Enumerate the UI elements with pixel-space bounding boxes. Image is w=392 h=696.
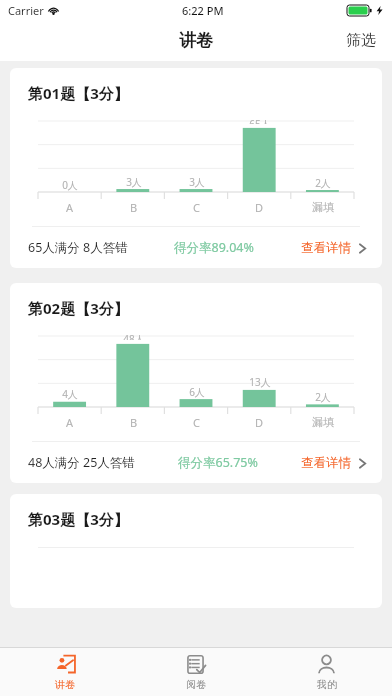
button[interactable]: 我的 [261, 648, 392, 696]
staticText: C [193, 200, 200, 215]
button[interactable]: 第03题【3分】 [10, 494, 382, 608]
staticText: 讲卷 [179, 30, 213, 51]
staticText: 我的 [317, 678, 337, 691]
staticText: 第01题【3分】 [28, 83, 129, 103]
staticText: D [255, 200, 264, 215]
staticText: A [66, 415, 74, 430]
staticText: B [130, 200, 138, 215]
staticText: 第03题【3分】 [28, 509, 129, 529]
button[interactable]: 筛选 [330, 20, 392, 61]
staticText: B [130, 415, 138, 430]
button[interactable]: 讲卷 [0, 648, 130, 696]
staticText: 查看详情 [301, 240, 351, 256]
staticText: 第02题【3分】 [28, 298, 129, 318]
button[interactable]: 阅卷 [130, 648, 261, 696]
staticText: 查看详情 [301, 455, 351, 471]
staticText: 48人 [123, 332, 145, 340]
staticText: D [255, 415, 264, 430]
staticText: 讲卷 [55, 678, 75, 691]
staticText: 3人 [126, 175, 142, 189]
staticText: 65人 [249, 117, 271, 124]
staticText: 6:22 PM [182, 3, 224, 18]
staticText: C [193, 415, 200, 430]
staticText: 6人 [189, 385, 205, 399]
staticText: 2人 [315, 390, 331, 404]
button[interactable]: 查看详情 [301, 240, 366, 256]
button[interactable]: 查看详情 [301, 455, 366, 471]
button[interactable]: 第02题【3分】 [10, 283, 382, 483]
staticText: 得分率65.75% [178, 454, 258, 471]
staticText: 筛选 [346, 31, 376, 50]
button[interactable]: 第01题【3分】 [10, 68, 382, 268]
staticText: 阅卷 [186, 678, 206, 691]
staticText: Carrier [8, 3, 44, 18]
staticText: 3人 [189, 175, 205, 189]
staticText: 48人满分 25人答错 [28, 454, 135, 471]
staticText: 0人 [62, 178, 78, 192]
staticText: 2人 [315, 176, 331, 190]
staticText: 4人 [62, 387, 78, 401]
staticText: 13人 [249, 375, 271, 389]
staticText: 得分率89.04% [174, 239, 254, 256]
staticText: 漏填 [312, 200, 334, 214]
staticText: 漏填 [312, 415, 334, 429]
staticText: 65人满分 8人答错 [28, 239, 128, 256]
staticText: A [66, 200, 74, 215]
